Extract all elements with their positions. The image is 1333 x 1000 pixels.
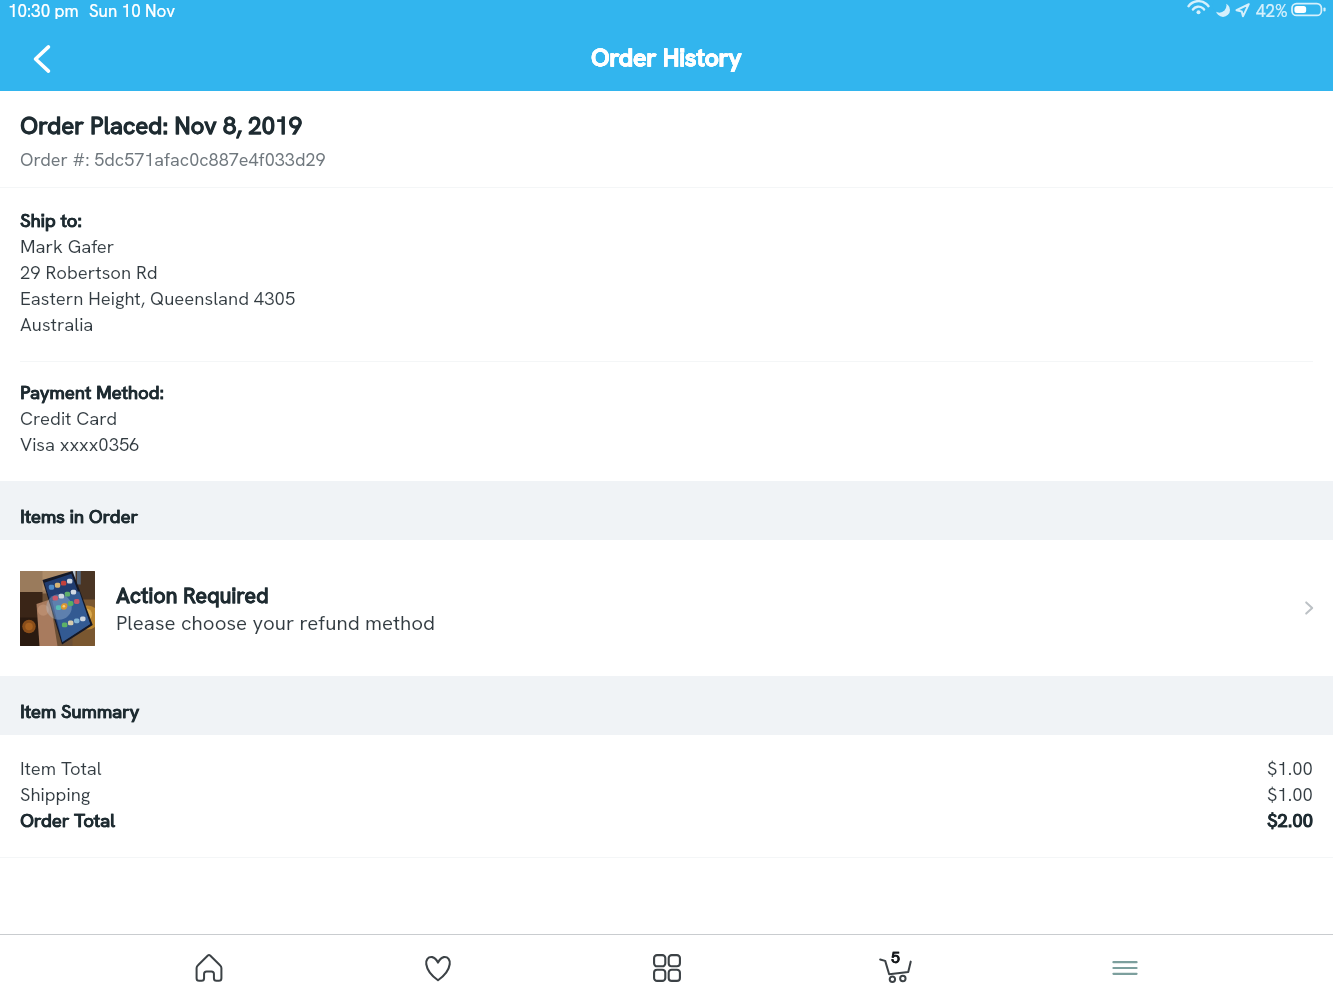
staticText: Item Summary — [20, 699, 140, 723]
staticText: Order History — [591, 41, 742, 73]
staticText: Order Total — [20, 808, 115, 832]
staticText: Items in Order — [20, 504, 138, 528]
staticText: Sun 10 Nov — [89, 0, 175, 19]
staticText: Action Required — [116, 581, 269, 609]
staticText: Order History — [591, 41, 742, 73]
staticText: Mark Gafer 29 Robertson Rd Eastern Heigh… — [20, 234, 296, 337]
staticText: Credit Card Visa xxxx0356 — [20, 406, 140, 457]
button[interactable]: Categories — [552, 935, 781, 1000]
staticText: Order #: 5dc571afac0c887e4f033d29 — [20, 148, 326, 171]
staticText: Order Total — [20, 808, 115, 832]
staticText: Please choose your refund method — [116, 609, 436, 636]
staticText: 10:30 pm — [8, 0, 79, 19]
staticText: Order Placed: Nov 8, 2019 — [20, 110, 302, 141]
staticText: Payment Method: — [20, 380, 164, 404]
staticText: $1.00 — [1267, 782, 1313, 806]
staticText: 5 — [891, 947, 900, 967]
button[interactable]: More — [1010, 935, 1239, 1000]
staticText: $2.00 — [1267, 808, 1313, 832]
staticText: Action Required — [116, 581, 269, 609]
staticText: Order Placed: Nov 8, 2019 — [20, 110, 302, 141]
staticText: Payment Method: — [20, 380, 164, 404]
staticText: Order Placed: Nov 8, 2019 — [20, 110, 302, 141]
staticText: Items in Order — [20, 504, 138, 528]
staticText: Ship to: — [20, 208, 82, 232]
button[interactable]: Home — [94, 935, 323, 1000]
button[interactable]: Favourites — [323, 935, 552, 1000]
button[interactable]: Back — [13, 30, 71, 88]
staticText: Action Required — [116, 581, 269, 609]
staticText: 5 — [891, 947, 900, 967]
staticText: Shipping — [20, 782, 91, 806]
staticText: 42% — [1256, 0, 1288, 19]
staticText: Payment Method: — [20, 380, 164, 404]
staticText: 5 — [891, 947, 900, 967]
button[interactable]: Cart, 5 items — [781, 935, 1010, 1000]
button[interactable]: Action Required — [0, 540, 1333, 676]
staticText: $1.00 — [1267, 756, 1313, 780]
staticText: Item Summary — [20, 699, 140, 723]
staticText: Ship to: — [20, 208, 82, 232]
staticText: Item Total — [20, 756, 102, 780]
staticText: Ship to: — [20, 208, 82, 232]
staticText: Order Total — [20, 808, 115, 832]
staticText: Item Summary — [20, 699, 140, 723]
staticText: Order History — [591, 41, 742, 73]
staticText: Items in Order — [20, 504, 138, 528]
staticText: $2.00 — [1267, 808, 1313, 832]
staticText: $2.00 — [1267, 808, 1313, 832]
